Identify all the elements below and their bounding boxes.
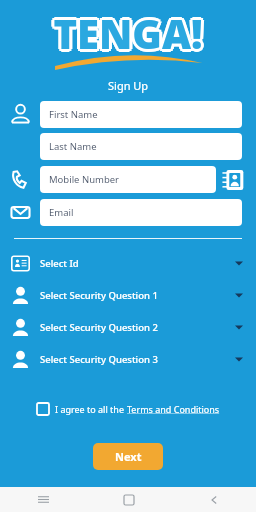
button[interactable]: Back [171, 487, 256, 512]
button[interactable]: Mobile Number [40, 166, 216, 193]
staticText: TENGA! [51, 4, 201, 58]
staticText: TENGA! [51, 8, 201, 62]
staticText: TENGA! [55, 4, 205, 58]
staticText: Select Security Question 3 [40, 353, 222, 366]
staticText: TENGA! [53, 3, 203, 57]
staticText: Sign Up [108, 78, 149, 93]
button[interactable]: Last Name [40, 133, 242, 160]
button[interactable]: Select Id [0, 247, 256, 279]
button[interactable]: Recent apps [0, 487, 86, 512]
staticText: TENGA! [53, 9, 203, 63]
button[interactable]: Select Security Question 3 [0, 343, 256, 375]
staticText: TENGA! [55, 8, 205, 62]
staticText: Select Security Question 2 [40, 321, 222, 334]
button[interactable]: Select Security Question 2 [0, 311, 256, 343]
staticText: Email [49, 206, 74, 219]
button[interactable]: Next [93, 443, 163, 470]
staticText: Last Name [49, 140, 97, 153]
button[interactable]: Terms and Conditions [127, 403, 220, 415]
staticText: TENGA! [53, 6, 203, 60]
staticText: I agree to all the [55, 403, 127, 415]
button[interactable]: First Name [40, 101, 242, 128]
staticText: Select Id [40, 257, 222, 270]
staticText: Next [115, 449, 142, 464]
staticText: First Name [49, 108, 98, 121]
button[interactable]: Email [40, 199, 242, 226]
staticText: Select Security Question 1 [40, 289, 222, 302]
button[interactable]: Select Security Question 1 [0, 279, 256, 311]
staticText: Mobile Number [49, 173, 120, 186]
button[interactable]: Home [86, 487, 171, 512]
staticText: TENGA! [50, 6, 200, 60]
button[interactable]: Pick contact [221, 168, 245, 192]
button[interactable]: I agree to all the [0, 399, 256, 419]
staticText: TENGA! [56, 6, 206, 60]
